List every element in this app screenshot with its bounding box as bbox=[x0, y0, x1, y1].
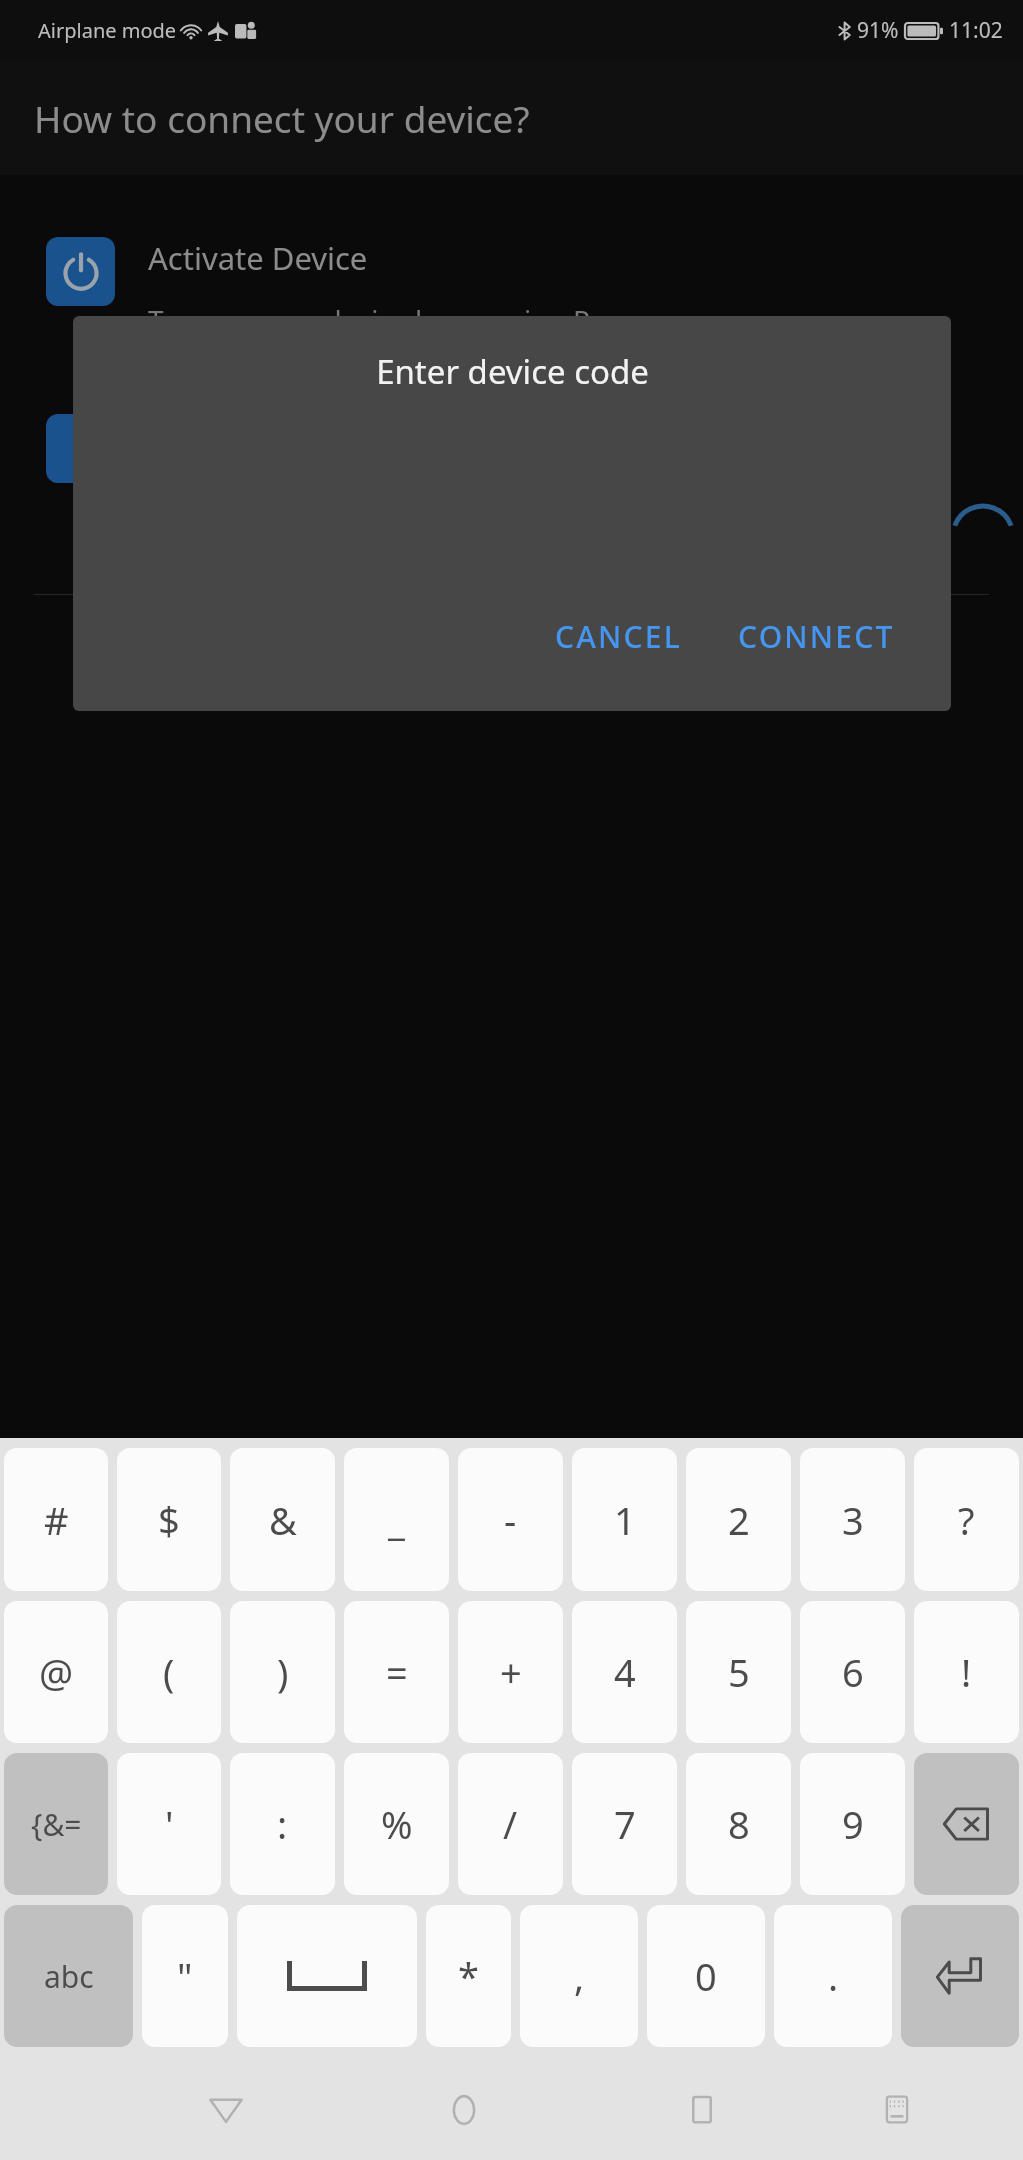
staticText: How to connect your device? bbox=[34, 93, 530, 143]
staticText: ? bbox=[958, 1494, 975, 1546]
button[interactable]: % bbox=[344, 1753, 449, 1895]
staticText: 91% bbox=[857, 16, 899, 45]
button[interactable]: Home bbox=[416, 2058, 512, 2160]
button[interactable]: = bbox=[344, 1601, 449, 1743]
staticText: Enter device code bbox=[376, 349, 649, 394]
staticText: 5 bbox=[728, 1646, 750, 1698]
staticText: 7 bbox=[614, 1798, 636, 1850]
staticText: 9 bbox=[842, 1798, 864, 1850]
button[interactable]: + bbox=[458, 1601, 563, 1743]
button[interactable]: ' bbox=[117, 1753, 221, 1895]
button[interactable]: 5 bbox=[686, 1601, 791, 1743]
button[interactable]: 7 bbox=[572, 1753, 677, 1895]
staticText: Activate Device bbox=[148, 237, 368, 279]
staticText: ( bbox=[163, 1646, 175, 1698]
staticText: / bbox=[503, 1798, 518, 1850]
button[interactable]: Back bbox=[178, 2058, 274, 2160]
button[interactable]: : bbox=[230, 1753, 335, 1895]
staticText: - bbox=[504, 1494, 517, 1546]
button[interactable]: . bbox=[774, 1905, 892, 2047]
staticText: abc bbox=[44, 1956, 94, 1997]
button[interactable]: & bbox=[230, 1448, 335, 1591]
staticText: 4 bbox=[614, 1646, 636, 1698]
button[interactable]: 1 bbox=[572, 1448, 677, 1591]
button[interactable]: # bbox=[4, 1448, 108, 1591]
button[interactable]: _ bbox=[344, 1448, 449, 1591]
button[interactable]: * bbox=[426, 1905, 511, 2047]
button[interactable]: ) bbox=[230, 1601, 335, 1743]
staticText: % bbox=[381, 1798, 413, 1850]
button[interactable]: 8 bbox=[686, 1753, 791, 1895]
staticText: {&= bbox=[31, 1804, 82, 1845]
staticText: 0 bbox=[695, 1950, 717, 2002]
staticText: * bbox=[458, 1950, 479, 2002]
staticText: ' bbox=[165, 1798, 174, 1850]
staticText: , bbox=[574, 1950, 585, 2002]
staticText: ) bbox=[277, 1646, 289, 1698]
staticText: 2 bbox=[728, 1494, 750, 1546]
staticText: _ bbox=[388, 1494, 405, 1546]
button[interactable]: Space bbox=[237, 1905, 417, 2047]
button[interactable]: 6 bbox=[800, 1601, 905, 1743]
staticText: @ bbox=[39, 1646, 74, 1698]
button[interactable]: $ bbox=[117, 1448, 221, 1591]
staticText: : bbox=[277, 1798, 288, 1850]
staticText: + bbox=[500, 1646, 522, 1698]
staticText: CANCEL bbox=[555, 616, 682, 657]
button[interactable]: 9 bbox=[800, 1753, 905, 1895]
button[interactable]: @ bbox=[4, 1601, 108, 1743]
staticText: Airplane mode bbox=[38, 17, 177, 44]
staticText: # bbox=[44, 1494, 69, 1546]
button[interactable]: Recents bbox=[654, 2058, 750, 2160]
staticText: $ bbox=[158, 1494, 180, 1546]
button[interactable]: ? bbox=[914, 1448, 1019, 1591]
staticText: Turn on your device by pressing Power bu… bbox=[148, 301, 656, 380]
button[interactable]: {&= bbox=[4, 1753, 108, 1895]
button[interactable]: CANCEL bbox=[541, 606, 696, 667]
button[interactable]: 3 bbox=[800, 1448, 905, 1591]
button[interactable]: Hide keyboard bbox=[849, 2058, 945, 2160]
staticText: = bbox=[386, 1646, 408, 1698]
button[interactable]: , bbox=[520, 1905, 638, 2047]
button[interactable]: Enter bbox=[901, 1905, 1019, 2047]
button[interactable]: CONNECT bbox=[724, 606, 909, 667]
button[interactable]: ! bbox=[914, 1601, 1019, 1743]
button[interactable]: 0 bbox=[647, 1905, 765, 2047]
button[interactable]: 2 bbox=[686, 1448, 791, 1591]
staticText: 11:02 bbox=[949, 16, 1003, 45]
button[interactable]: Backspace bbox=[914, 1753, 1019, 1895]
staticText: " bbox=[177, 1950, 193, 2002]
staticText: ! bbox=[961, 1646, 972, 1698]
staticText: . bbox=[828, 1950, 839, 2002]
staticText: 8 bbox=[728, 1798, 750, 1850]
button[interactable]: abc bbox=[4, 1905, 133, 2047]
staticText: & bbox=[269, 1494, 297, 1546]
staticText: CONNECT bbox=[738, 616, 895, 657]
button[interactable]: 4 bbox=[572, 1601, 677, 1743]
staticText: 1 bbox=[614, 1494, 636, 1546]
staticText: 3 bbox=[842, 1494, 864, 1546]
button[interactable]: ( bbox=[117, 1601, 221, 1743]
staticText: 6 bbox=[842, 1646, 864, 1698]
button[interactable]: / bbox=[458, 1753, 563, 1895]
button[interactable]: - bbox=[458, 1448, 563, 1591]
button[interactable]: " bbox=[142, 1905, 228, 2047]
